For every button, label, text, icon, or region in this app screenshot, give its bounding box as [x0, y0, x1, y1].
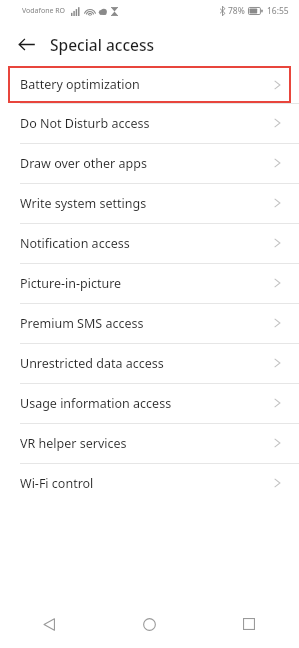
- button[interactable]: Back: [0, 600, 99, 648]
- staticText: Premium SMS access: [20, 315, 144, 332]
- staticText: Usage information access: [20, 395, 172, 412]
- staticText: Draw over other apps: [20, 155, 147, 172]
- button[interactable]: Notification access: [0, 223, 299, 263]
- button[interactable]: Recent apps: [199, 600, 299, 648]
- staticText: Special access: [50, 34, 154, 55]
- staticText: 16:55: [267, 5, 289, 17]
- button[interactable]: Back: [12, 30, 40, 58]
- staticText: 78%: [228, 5, 245, 17]
- button[interactable]: Picture-in-picture: [0, 263, 299, 303]
- button[interactable]: VR helper services: [0, 423, 299, 463]
- button[interactable]: Battery optimization: [8, 66, 291, 103]
- staticText: Notification access: [20, 235, 130, 252]
- staticText: Wi-Fi control: [20, 475, 94, 492]
- button[interactable]: Unrestricted data access: [0, 343, 299, 383]
- button[interactable]: Usage information access: [0, 383, 299, 423]
- staticText: Battery optimization: [20, 76, 140, 93]
- staticText: Picture-in-picture: [20, 275, 122, 292]
- staticText: Write system settings: [20, 195, 147, 212]
- staticText: Vodafone RO: [22, 6, 66, 16]
- button[interactable]: Home: [99, 600, 199, 648]
- button[interactable]: Draw over other apps: [0, 143, 299, 183]
- button[interactable]: Do Not Disturb access: [0, 103, 299, 143]
- staticText: Unrestricted data access: [20, 355, 164, 372]
- button[interactable]: Write system settings: [0, 183, 299, 223]
- button[interactable]: Wi-Fi control: [0, 463, 299, 503]
- staticText: VR helper services: [20, 435, 127, 452]
- button[interactable]: Premium SMS access: [0, 303, 299, 343]
- staticText: Do Not Disturb access: [20, 115, 150, 132]
